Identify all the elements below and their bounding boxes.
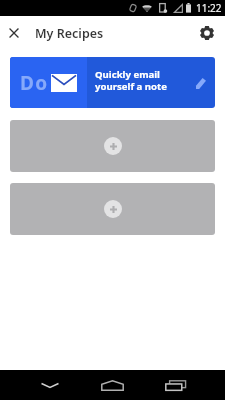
button[interactable]: Add recipe — [10, 120, 215, 172]
button[interactable]: Settings — [189, 16, 225, 50]
staticText: 11:22 — [196, 1, 222, 15]
button[interactable]: Do — [10, 57, 215, 108]
button[interactable]: Add recipe — [10, 183, 215, 235]
button[interactable]: Back — [25, 370, 75, 400]
staticText: Do — [20, 70, 49, 96]
button[interactable]: Close — [0, 16, 28, 50]
staticText: My Recipes — [35, 25, 104, 42]
button[interactable]: Recents — [150, 370, 200, 400]
button[interactable]: Edit — [187, 69, 215, 97]
staticText: Quickly email yourself a note — [95, 68, 167, 93]
button[interactable]: Home — [87, 370, 137, 400]
